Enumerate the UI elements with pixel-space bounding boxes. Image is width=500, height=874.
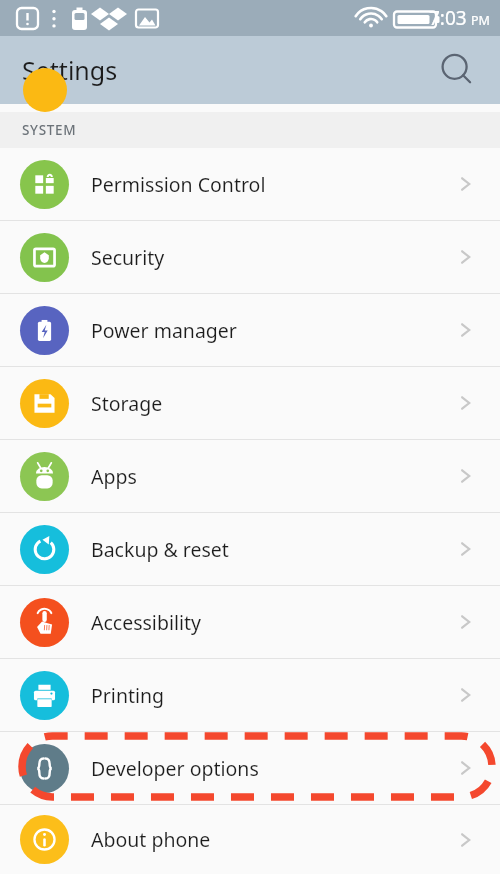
staticText: Accessibility [91,609,201,636]
staticText: Backup & reset [91,536,229,563]
staticText: PM [471,12,490,29]
button[interactable]: Apps [0,440,500,512]
staticText: Security [91,244,165,271]
staticText: Settings [22,53,118,87]
button[interactable]: Backup & reset [0,513,500,585]
staticText: Storage [91,390,163,417]
button[interactable]: Storage [0,367,500,439]
button[interactable]: Accessibility [0,586,500,658]
staticText: Printing [91,682,165,709]
button[interactable]: Developer options [0,732,500,804]
button[interactable]: Printing [0,659,500,731]
staticText: About phone [91,826,211,853]
staticText: Permission Control [91,171,266,198]
staticText: SYSTEM [22,121,77,139]
staticText: Developer options [91,755,259,782]
button[interactable]: Permission Control [0,148,500,220]
button[interactable]: Search [434,47,480,93]
staticText: Power manager [91,317,237,344]
button[interactable]: Power manager [0,294,500,366]
staticText: Apps [91,463,137,490]
staticText: 7:03 [429,5,467,31]
button[interactable]: Security [0,221,500,293]
button[interactable]: About phone [0,805,500,874]
